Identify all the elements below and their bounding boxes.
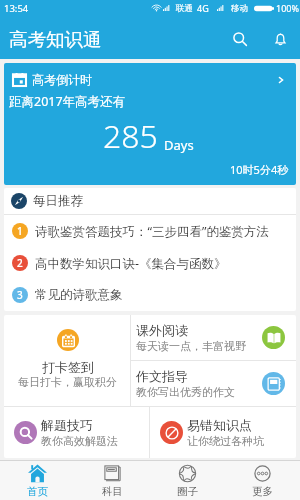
staticText: 100% bbox=[276, 2, 299, 14]
staticText: 4G bbox=[197, 2, 209, 14]
button[interactable]: Notifications bbox=[260, 19, 300, 59]
staticText: 移动 bbox=[231, 3, 248, 14]
staticText: 教你写出优秀的作文 bbox=[136, 385, 235, 399]
button[interactable]: 解题技巧 bbox=[4, 407, 149, 458]
staticText: 让你绕过各种坑 bbox=[187, 434, 264, 448]
staticText: 更多 bbox=[252, 485, 273, 498]
button[interactable]: Search bbox=[220, 19, 260, 59]
staticText: 10时5分4秒 bbox=[230, 162, 289, 177]
staticText: 2 bbox=[17, 256, 23, 270]
button[interactable]: 2 bbox=[4, 247, 296, 279]
staticText: 打卡签到 bbox=[42, 359, 94, 375]
staticText: 诗歌鉴赏答题技巧：“三步四看”的鉴赏方法 bbox=[35, 223, 269, 240]
staticText: 解题技巧 bbox=[41, 417, 93, 433]
button[interactable]: 作文指导 bbox=[131, 361, 296, 406]
button[interactable]: 首页 bbox=[0, 461, 75, 500]
staticText: 3 bbox=[17, 288, 23, 302]
button[interactable]: 1 bbox=[4, 215, 296, 247]
button[interactable]: 圈子 bbox=[150, 461, 225, 500]
staticText: 常见的诗歌意象 bbox=[35, 287, 123, 303]
button[interactable]: 更多 bbox=[225, 461, 300, 500]
staticText: 距离2017年高考还有 bbox=[9, 93, 126, 110]
button[interactable]: 科目 bbox=[75, 461, 150, 500]
staticText: 每日打卡，赢取积分 bbox=[18, 375, 117, 389]
staticText: 高考倒计时 bbox=[32, 72, 92, 87]
staticText: 联通 bbox=[176, 3, 193, 14]
staticText: 首页 bbox=[27, 485, 48, 498]
staticText: Days bbox=[164, 136, 194, 154]
staticText: 高中数学知识口诀-《集合与函数》 bbox=[35, 255, 227, 272]
staticText: 高考知识通 bbox=[9, 28, 102, 51]
staticText: 科目 bbox=[102, 485, 123, 498]
staticText: 每日推荐 bbox=[33, 193, 83, 209]
button[interactable]: 3 bbox=[4, 279, 296, 311]
button[interactable]: 课外阅读 bbox=[131, 315, 296, 360]
button[interactable]: 易错知识点 bbox=[150, 407, 296, 458]
staticText: 圈子 bbox=[177, 485, 198, 498]
staticText: 285 bbox=[103, 114, 158, 158]
staticText: 教你高效解题法 bbox=[41, 434, 118, 448]
staticText: 作文指导 bbox=[136, 368, 188, 384]
staticText: 课外阅读 bbox=[136, 322, 188, 338]
staticText: 每天读一点，丰富视野 bbox=[136, 339, 246, 353]
staticText: 易错知识点 bbox=[187, 417, 252, 433]
staticText: 1 bbox=[17, 224, 23, 238]
staticText: 13:54 bbox=[4, 2, 29, 15]
button[interactable]: 高考倒计时 bbox=[4, 63, 296, 185]
button[interactable]: 打卡签到 bbox=[4, 315, 130, 406]
